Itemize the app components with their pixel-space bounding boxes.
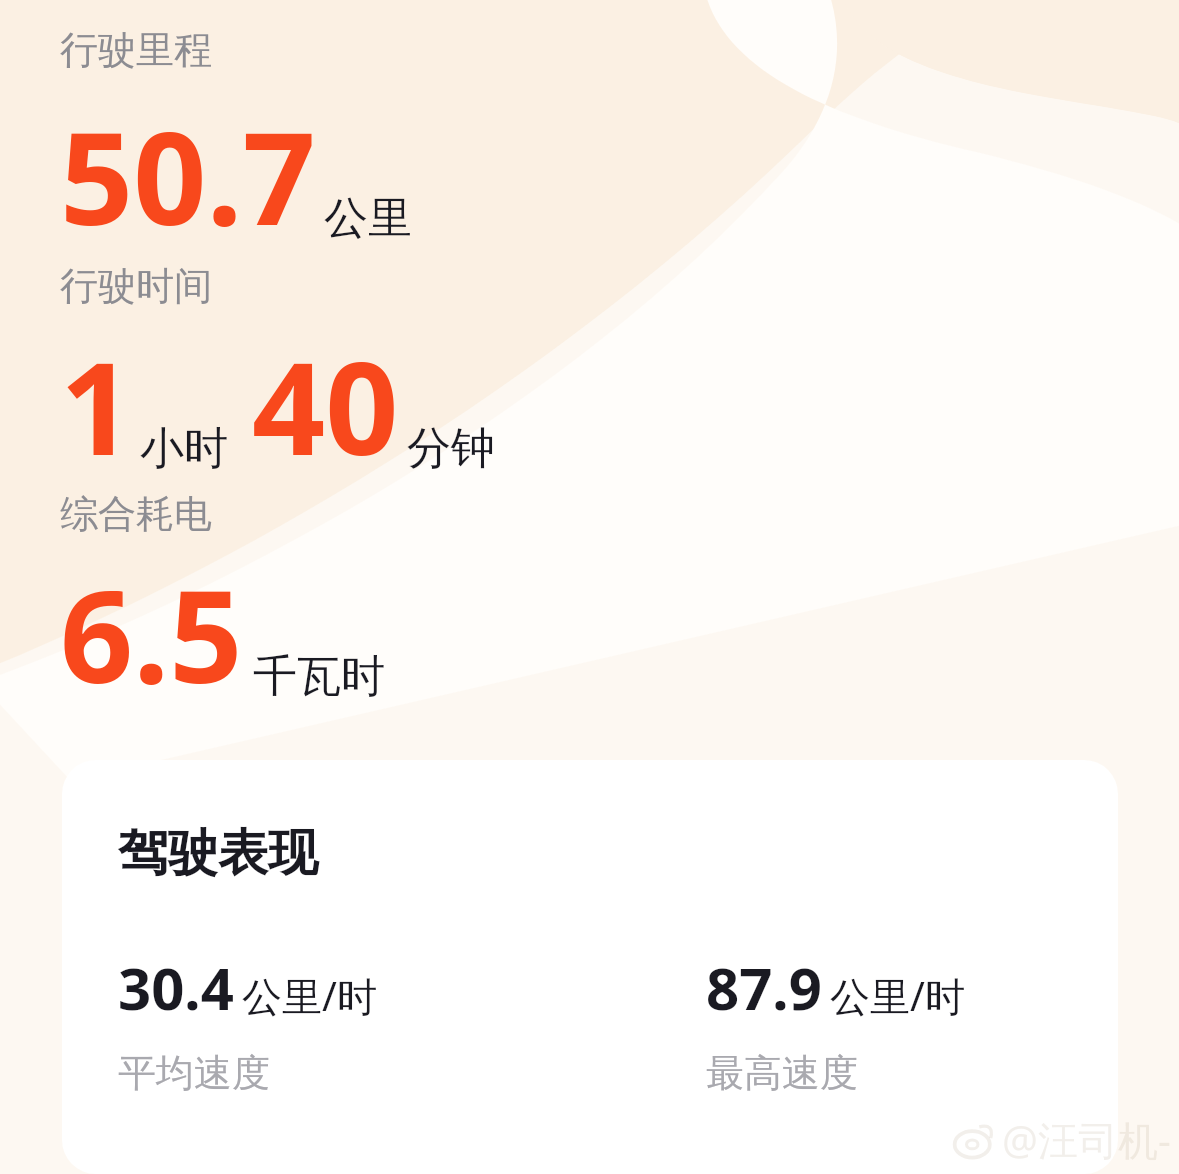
staticText: 平均速度 [118,1049,270,1097]
staticText: 40 [252,318,399,492]
staticText: 千瓦时 [253,649,385,704]
staticText: 公里/时 [830,968,965,1023]
button[interactable]: 87.9 [706,948,957,1075]
other: Weibo [952,1118,996,1162]
staticText: 行驶时间 [60,262,212,310]
staticText: 30.4 [118,948,234,1027]
staticText: 6.5 [60,546,243,720]
staticText: 行驶里程 [60,26,212,74]
staticText: 1 [60,318,134,492]
staticText: 最高速度 [706,1049,858,1097]
button[interactable]: 驾驶表现 [62,760,1118,1174]
staticText: 驾驶表现 [118,822,318,885]
staticText: 公里/时 [242,968,377,1023]
staticText: 分钟 [407,421,495,476]
staticText: 50.7 [60,88,316,262]
staticText: 综合耗电 [60,490,212,538]
staticText: @汪司机- [1002,1112,1171,1167]
staticText: 公里 [324,191,412,246]
staticText: 小时 [140,421,228,476]
staticText: 87.9 [706,948,822,1027]
button[interactable]: 30.4 [118,948,369,1075]
